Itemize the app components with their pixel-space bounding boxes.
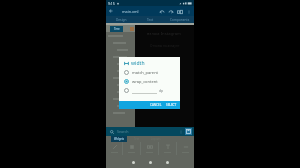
button[interactable] [106, 95, 135, 102]
button[interactable]: Redo [166, 7, 175, 16]
staticText: Tree [114, 27, 120, 31]
button[interactable]: wrap_content [124, 77, 176, 86]
button[interactable] [123, 142, 140, 155]
button[interactable]: More options [184, 7, 193, 16]
button[interactable]: Filter [178, 129, 184, 135]
staticText: width [131, 60, 145, 67]
staticText: Search [117, 129, 129, 134]
button[interactable]: Tree [110, 26, 123, 32]
button[interactable] [106, 46, 135, 53]
staticText: SELECT [166, 103, 177, 107]
staticText: Components [170, 18, 190, 22]
staticText: wrap_content [132, 79, 158, 84]
button[interactable] [106, 102, 135, 109]
button[interactable] [106, 142, 122, 155]
button[interactable]: match_parent [124, 68, 176, 77]
button[interactable]: Components [165, 16, 194, 23]
staticText: Text [147, 18, 154, 22]
button[interactable] [106, 60, 135, 67]
button[interactable]: SELECT [164, 103, 179, 107]
button[interactable] [106, 53, 135, 60]
button[interactable]: Design [106, 16, 136, 23]
button[interactable] [141, 142, 158, 155]
button[interactable] [106, 81, 135, 88]
staticText: Widgets [114, 137, 124, 141]
button[interactable] [106, 32, 135, 39]
button[interactable] [159, 142, 176, 155]
staticText: match_parent [132, 70, 159, 75]
button[interactable]: Home [144, 156, 156, 168]
button[interactable] [106, 88, 135, 95]
button[interactable]: Navigate up [107, 7, 115, 15]
staticText: взлом Instagram [147, 31, 182, 37]
button[interactable]: Search [109, 129, 115, 135]
button[interactable]: Recents [161, 156, 173, 168]
button[interactable] [106, 39, 135, 46]
button[interactable]: Device preview [175, 7, 184, 16]
button[interactable] [106, 74, 135, 81]
button[interactable]: Back [127, 156, 139, 168]
staticText: 9:15 [108, 1, 115, 6]
staticText: CANCEL [150, 103, 162, 107]
staticText: main.xml [122, 9, 139, 14]
button[interactable] [106, 109, 135, 116]
button[interactable] [106, 67, 135, 74]
staticText: Отзывы на аккаунт [150, 44, 180, 48]
button[interactable]: Save [185, 128, 192, 135]
button[interactable]: Widgets [111, 136, 127, 142]
button[interactable]: Undo [157, 7, 166, 16]
button[interactable]: CANCEL [148, 103, 164, 107]
staticText: dp [159, 88, 164, 93]
staticText: Design [116, 18, 127, 22]
button[interactable]: Text [136, 16, 165, 23]
